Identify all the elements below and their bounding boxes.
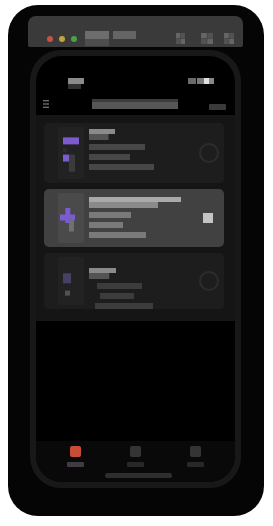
button[interactable]: Toolbar action <box>224 33 234 44</box>
button[interactable]: More options <box>199 271 219 291</box>
button[interactable]: Toolbar action <box>176 33 185 44</box>
button[interactable]: Saved <box>115 443 156 470</box>
button[interactable]: Bookmark <box>201 211 215 225</box>
button[interactable]: Toolbar action <box>201 33 213 44</box>
button[interactable]: More options <box>44 123 224 183</box>
button[interactable]: Profile <box>175 443 216 470</box>
button[interactable]: More options <box>199 143 219 163</box>
button[interactable]: More options <box>44 253 224 309</box>
button[interactable]: Minimise window <box>59 36 65 42</box>
button[interactable]: Home <box>55 443 96 470</box>
button[interactable]: Close window <box>47 36 53 42</box>
button[interactable]: Bookmark <box>44 189 224 247</box>
button[interactable]: Maximise window <box>71 36 77 42</box>
button[interactable]: Menu <box>38 96 54 112</box>
